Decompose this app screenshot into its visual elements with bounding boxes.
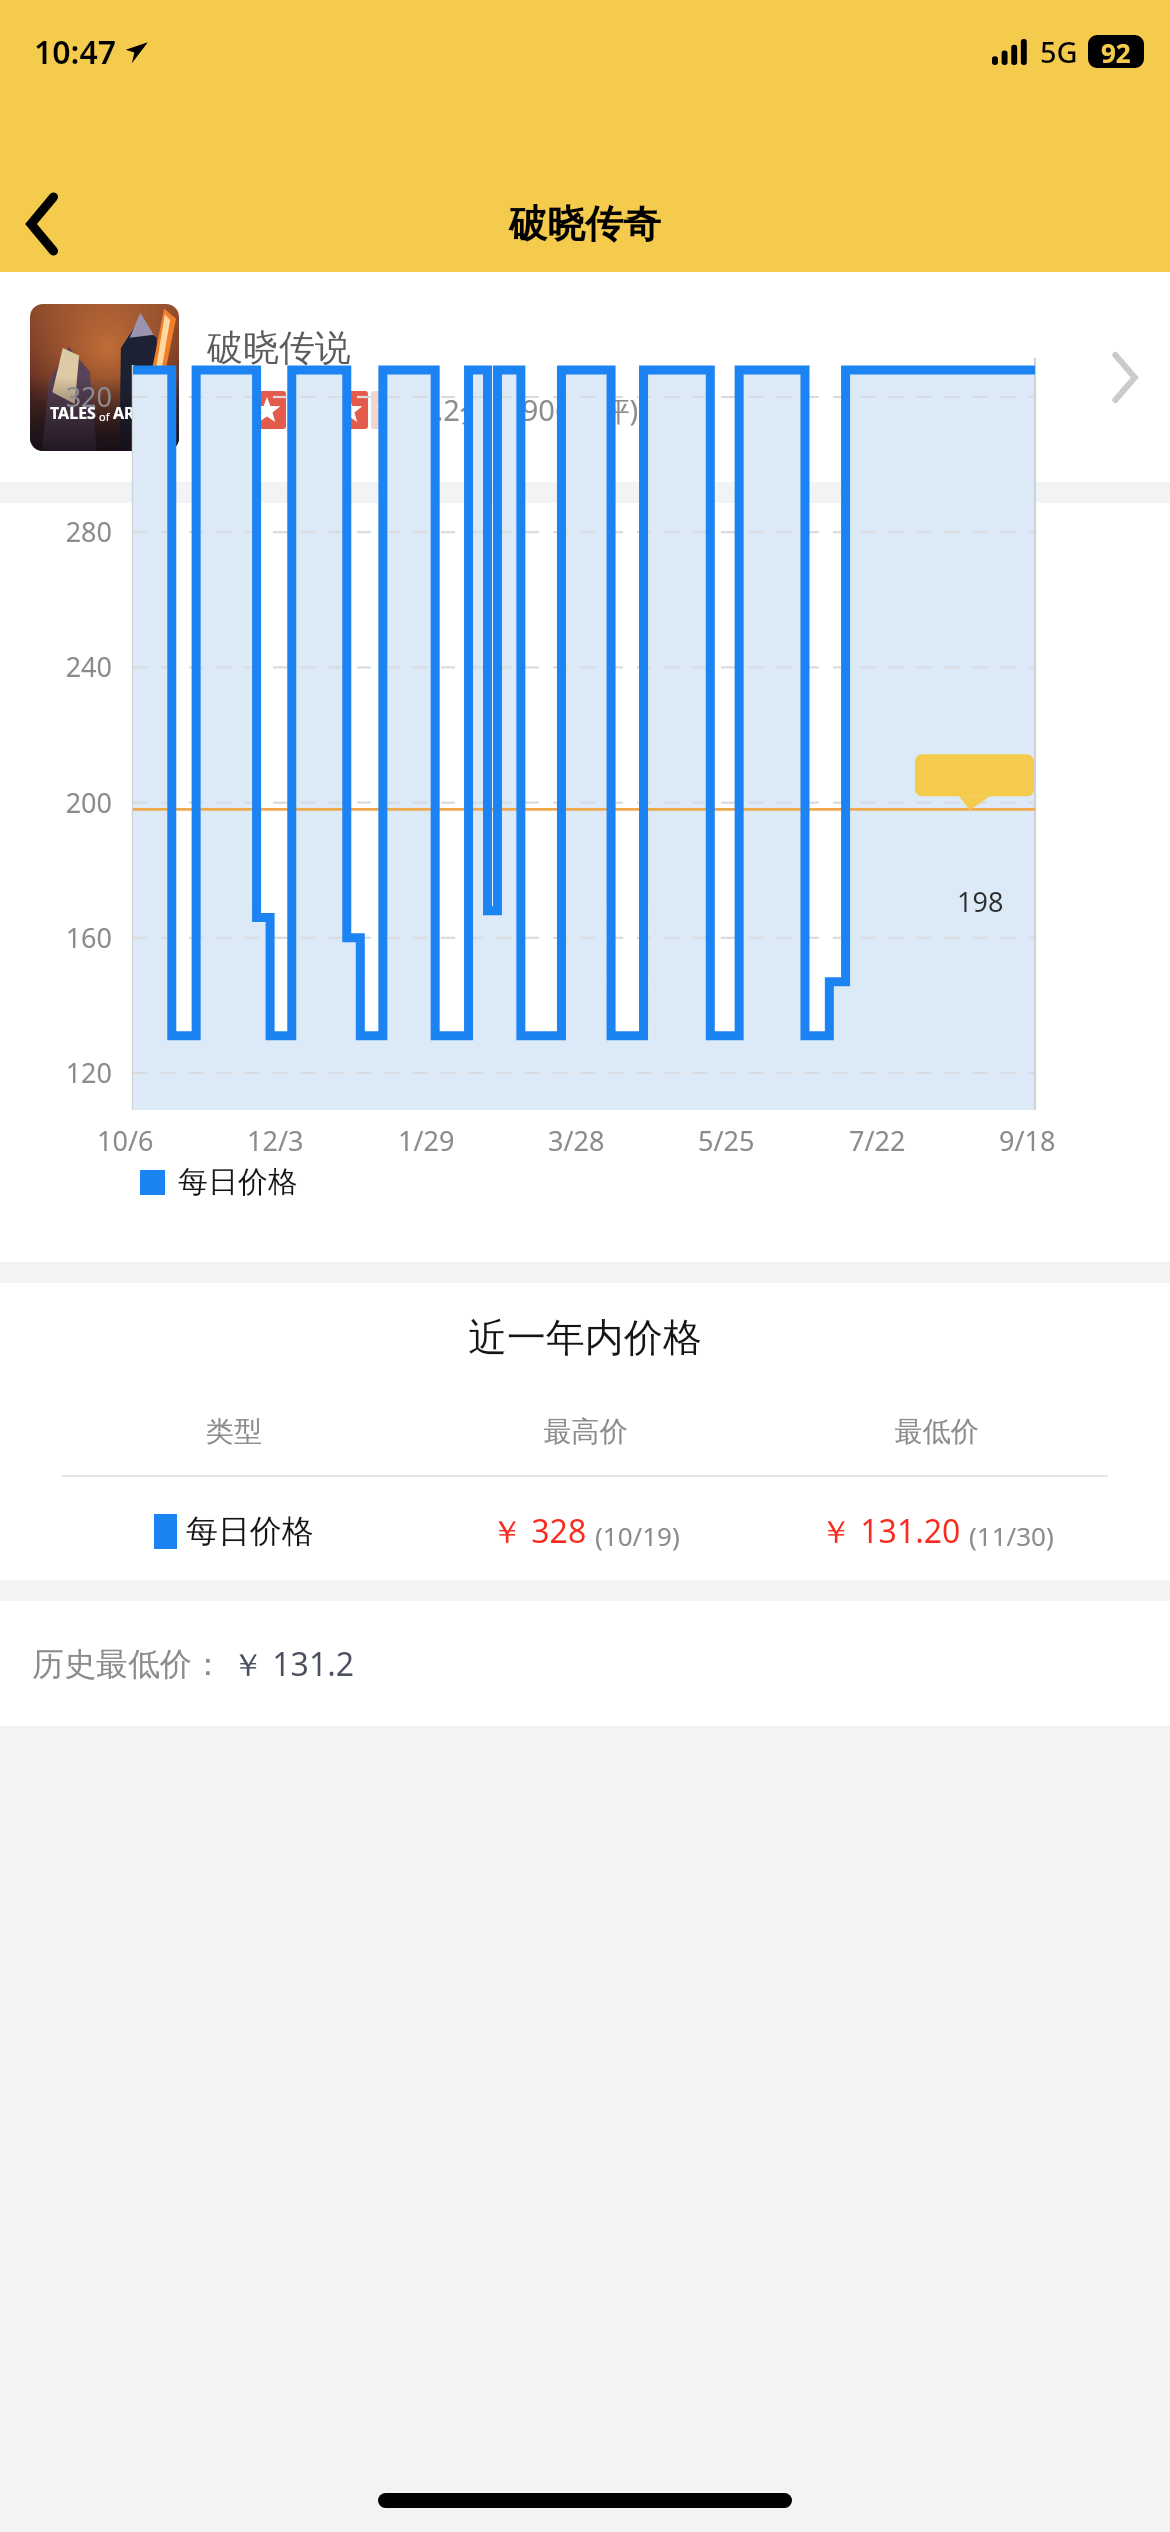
- staticText: 近一年内价格: [0, 1313, 1170, 1362]
- staticText: 7/22: [849, 1122, 906, 1159]
- staticText: (10/19): [595, 1518, 680, 1553]
- staticText: 320: [0, 378, 112, 415]
- staticText: 198: [957, 883, 1004, 920]
- staticText: 破晓传奇: [509, 200, 661, 248]
- staticText: 10/6: [97, 1122, 154, 1159]
- staticText: 1/29: [398, 1122, 455, 1159]
- staticText: 最高价: [410, 1414, 761, 1449]
- staticText: 历史最低价：: [32, 1644, 224, 1684]
- staticText: 每日价格: [186, 1511, 314, 1551]
- staticText: ￥ 131.20: [820, 1509, 961, 1553]
- staticText: 9/18: [999, 1122, 1056, 1159]
- staticText: of: [99, 409, 110, 424]
- staticText: ￥ 328: [491, 1509, 587, 1553]
- staticText: ￥ 131.2: [232, 1642, 355, 1686]
- staticText: (11/30): [969, 1518, 1054, 1553]
- staticText: 200: [0, 784, 112, 821]
- staticText: 5/25: [698, 1122, 755, 1159]
- staticText: 280: [0, 513, 112, 550]
- staticText: 160: [0, 919, 112, 956]
- other: Open game details: [1111, 355, 1138, 400]
- staticText: 5G: [1040, 32, 1078, 71]
- staticText: 92: [1101, 35, 1131, 68]
- staticText: 120: [0, 1054, 112, 1091]
- staticText: 3/28: [548, 1122, 605, 1159]
- staticText: ARISE: [113, 402, 159, 424]
- staticText: 类型: [58, 1414, 410, 1449]
- staticText: 240: [0, 648, 112, 685]
- staticText: 每日价格: [178, 1163, 298, 1201]
- staticText: 破晓传说: [207, 325, 351, 370]
- staticText: TALES: [50, 402, 96, 424]
- staticText: 12/3: [247, 1122, 304, 1159]
- button[interactable]: Back: [0, 181, 86, 267]
- staticText: 8.2分 (3906人评): [419, 390, 639, 430]
- staticText: 最低价: [761, 1414, 1112, 1449]
- staticText: 10:47: [34, 30, 117, 74]
- button[interactable]: TALES: [0, 272, 1170, 482]
